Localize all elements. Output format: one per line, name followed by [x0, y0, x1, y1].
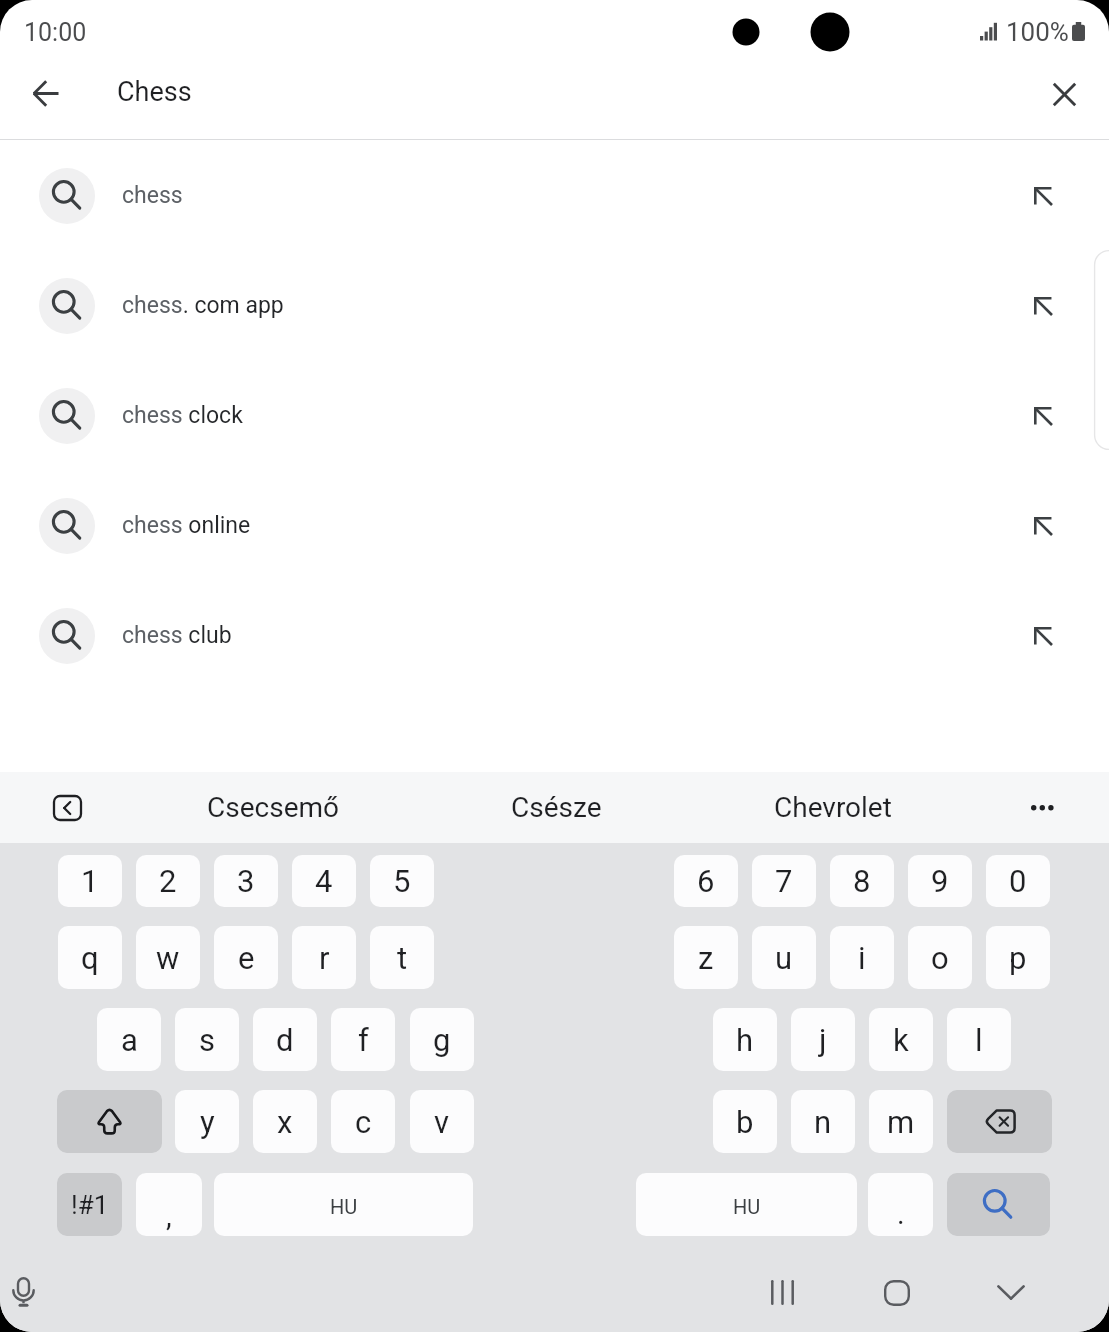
button[interactable]: Shift — [57, 1090, 162, 1153]
staticText: 9 — [931, 863, 949, 899]
staticText: 3 — [237, 863, 255, 899]
staticText: HU — [733, 1195, 761, 1218]
button[interactable]: HU — [636, 1173, 857, 1236]
staticText: w — [156, 940, 180, 976]
button[interactable]: Use suggestion — [1013, 606, 1073, 666]
button[interactable]: chess clock — [0, 361, 1109, 470]
staticText: !#1 — [71, 1190, 109, 1220]
staticText: k — [893, 1022, 909, 1058]
staticText: Chess — [117, 76, 192, 108]
staticText: 4 — [315, 863, 333, 899]
staticText: n — [814, 1104, 832, 1140]
button[interactable]: chess club — [0, 581, 1109, 690]
button[interactable]: chess. com app — [0, 251, 1109, 360]
button[interactable]: Voice input — [1, 1271, 45, 1315]
button[interactable]: e — [214, 926, 278, 989]
staticText: i — [858, 940, 866, 976]
staticText: d — [276, 1022, 294, 1058]
button[interactable]: r — [292, 926, 356, 989]
button[interactable]: Clear search — [1029, 59, 1099, 129]
staticText: j — [819, 1022, 827, 1058]
other: Shift — [96, 1107, 123, 1135]
staticText: f — [358, 1022, 369, 1058]
staticText: chess. com app — [122, 292, 284, 319]
staticText: p — [1009, 940, 1027, 976]
button[interactable]: q — [58, 926, 122, 989]
button[interactable]: Recent apps — [771, 1280, 794, 1305]
button[interactable]: y — [175, 1090, 239, 1153]
staticText: g — [433, 1022, 451, 1058]
button[interactable]: , — [136, 1173, 202, 1236]
button[interactable]: chess online — [0, 471, 1109, 580]
button[interactable]: m — [869, 1090, 933, 1153]
staticText: chess online — [122, 512, 251, 539]
button[interactable]: Backspace — [947, 1090, 1052, 1153]
button[interactable]: 0 — [986, 855, 1050, 907]
staticText: r — [319, 940, 330, 976]
button[interactable]: 4 — [292, 855, 356, 907]
button[interactable]: 2 — [136, 855, 200, 907]
button[interactable]: 3 — [214, 855, 278, 907]
staticText: 6 — [697, 863, 715, 899]
button[interactable]: 7 — [752, 855, 816, 907]
button[interactable]: Navigate up — [11, 59, 82, 130]
staticText: y — [200, 1104, 215, 1140]
button[interactable]: Previous suggestions — [54, 796, 81, 820]
button[interactable]: v — [410, 1090, 474, 1153]
button[interactable]: i — [830, 926, 894, 989]
button[interactable]: b — [713, 1090, 777, 1153]
button[interactable]: !#1 — [57, 1173, 122, 1236]
staticText: chess club — [122, 622, 232, 649]
button[interactable]: Use suggestion — [1013, 276, 1073, 336]
button[interactable]: Search — [947, 1173, 1050, 1236]
button[interactable]: k — [869, 1008, 933, 1071]
button[interactable]: c — [331, 1090, 395, 1153]
staticText: m — [887, 1104, 915, 1140]
staticText: e — [238, 940, 255, 976]
button[interactable]: u — [752, 926, 816, 989]
staticText: v — [434, 1104, 450, 1140]
button[interactable]: a — [97, 1008, 161, 1071]
other: Search — [982, 1189, 1012, 1219]
button[interactable]: Use suggestion — [1013, 496, 1073, 556]
staticText: s — [199, 1022, 215, 1058]
staticText: t — [397, 940, 408, 976]
staticText: . — [897, 1197, 905, 1231]
staticText: h — [736, 1022, 754, 1058]
button[interactable]: x — [253, 1090, 317, 1153]
button[interactable]: z — [674, 926, 738, 989]
button[interactable]: h — [713, 1008, 777, 1071]
staticText: 0 — [1009, 863, 1027, 899]
button[interactable]: Hide keyboard — [997, 1285, 1025, 1300]
staticText: Csésze — [511, 791, 602, 824]
staticText: , — [166, 1199, 172, 1233]
button[interactable]: HU — [214, 1173, 473, 1236]
button[interactable]: n — [791, 1090, 855, 1153]
button[interactable]: . — [868, 1173, 933, 1236]
button[interactable]: 8 — [830, 855, 894, 907]
button[interactable]: Use suggestion — [1013, 386, 1073, 446]
button[interactable]: f — [331, 1008, 395, 1071]
button[interactable]: d — [253, 1008, 317, 1071]
staticText: 7 — [775, 863, 793, 899]
button[interactable]: g — [410, 1008, 474, 1071]
button[interactable]: 1 — [58, 855, 122, 907]
button[interactable]: t — [370, 926, 434, 989]
button[interactable]: s — [175, 1008, 239, 1071]
staticText: 2 — [159, 863, 177, 899]
button[interactable]: 6 — [674, 855, 738, 907]
button[interactable]: 9 — [908, 855, 972, 907]
staticText: a — [121, 1022, 138, 1058]
staticText: 1 — [81, 863, 99, 899]
staticText: c — [355, 1104, 372, 1140]
button[interactable]: j — [791, 1008, 855, 1071]
button[interactable]: p — [986, 926, 1050, 989]
button[interactable]: o — [908, 926, 972, 989]
button[interactable]: Use suggestion — [1013, 166, 1073, 226]
button[interactable]: chess — [0, 141, 1109, 250]
button[interactable]: l — [947, 1008, 1011, 1071]
staticText: HU — [330, 1195, 358, 1218]
button[interactable]: Home — [884, 1280, 910, 1306]
button[interactable]: w — [136, 926, 200, 989]
button[interactable]: 5 — [370, 855, 434, 907]
